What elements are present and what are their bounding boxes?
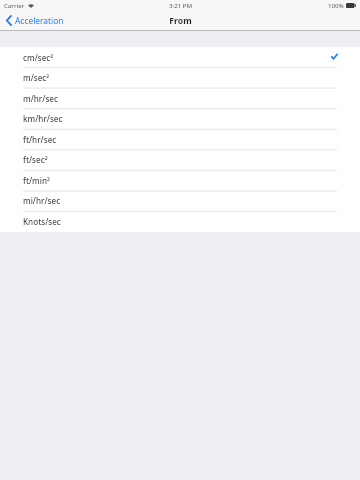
button[interactable]: ft/sec²	[0, 149, 360, 170]
staticText: ft/min²	[23, 175, 50, 186]
staticText: Carrier	[4, 1, 25, 9]
staticText: 100%	[328, 1, 344, 9]
staticText: ft/hr/sec	[23, 134, 57, 145]
other: Battery full	[346, 3, 356, 8]
staticText: 3:21 PM	[169, 1, 193, 9]
staticText: ft/sec²	[23, 154, 48, 165]
staticText: From	[169, 15, 192, 27]
button[interactable]: ft/min²	[0, 170, 360, 191]
staticText: mi/hr/sec	[23, 195, 61, 206]
button[interactable]: Acceleration	[0, 15, 70, 26]
staticText: m/sec²	[23, 72, 50, 83]
button[interactable]: m/hr/sec	[0, 88, 360, 109]
button[interactable]: m/sec²	[0, 67, 360, 88]
button[interactable]: mi/hr/sec	[0, 190, 360, 211]
other: Selected	[331, 53, 338, 60]
staticText: Knots/sec	[23, 216, 61, 227]
staticText: Acceleration	[15, 15, 64, 26]
button[interactable]: Knots/sec	[0, 211, 360, 232]
staticText: m/hr/sec	[23, 93, 58, 104]
button[interactable]: km/hr/sec	[0, 108, 360, 129]
staticText: km/hr/sec	[23, 113, 63, 124]
button[interactable]: cm/sec²	[0, 47, 360, 68]
staticText: cm/sec²	[23, 52, 54, 63]
button[interactable]: ft/hr/sec	[0, 129, 360, 150]
other: Wi-Fi signal	[28, 3, 34, 8]
